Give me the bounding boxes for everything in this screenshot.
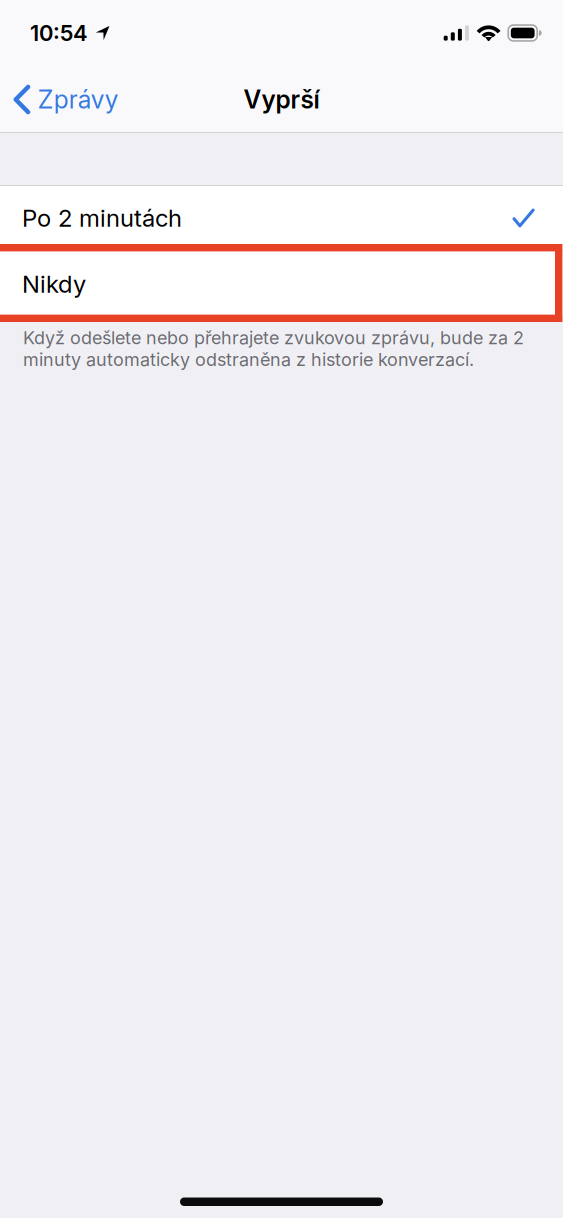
button[interactable]: Po 2 minutách (0, 185, 563, 251)
staticText: Vyprší (243, 85, 319, 114)
staticText: Nikdy (22, 269, 86, 298)
button[interactable]: Zprávy (0, 67, 133, 131)
staticText: 10:54 (30, 20, 88, 46)
button[interactable]: Nikdy (0, 251, 563, 317)
staticText: Po 2 minutách (22, 203, 182, 232)
staticText: Zprávy (38, 84, 119, 114)
staticText: Když odešlete nebo přehrajete zvukovou z… (23, 327, 524, 370)
